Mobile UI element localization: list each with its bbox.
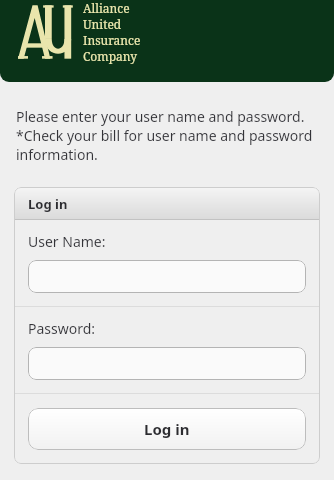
staticText: information.	[16, 145, 98, 164]
staticText: Please enter your user name and password…	[16, 107, 305, 126]
staticText: United	[83, 16, 122, 32]
staticText: Password:	[28, 319, 96, 338]
staticText: Company	[83, 48, 138, 64]
button[interactable]: User Name:	[28, 260, 306, 293]
other: Alliance United Insurance Company logo	[18, 3, 72, 61]
staticText: Log in	[28, 195, 68, 213]
staticText: User Name:	[28, 232, 106, 251]
staticText: *Check your bill for user name and passw…	[16, 126, 313, 145]
staticText: Log in	[144, 419, 190, 439]
button[interactable]: Log in	[28, 408, 306, 450]
button[interactable]: Password:	[28, 347, 306, 380]
staticText: Insurance	[83, 32, 141, 48]
staticText: Alliance	[83, 0, 130, 16]
